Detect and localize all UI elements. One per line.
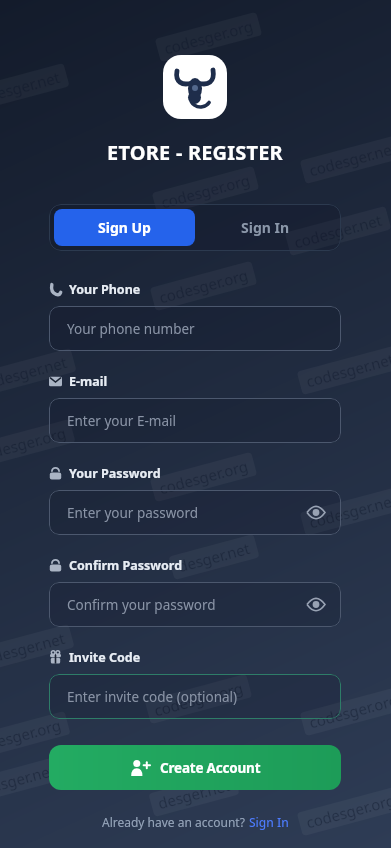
staticText: Enter your password [67,504,199,522]
button[interactable]: Sign In [249,814,289,830]
staticText: codesger.org [159,170,252,212]
staticText: codesger.org [304,790,391,832]
staticText: E-mail [69,373,108,390]
staticText: Your Password [69,465,161,482]
staticText: desger.net [0,67,62,105]
staticText: Confirm Password [69,557,183,574]
staticText: desger.org [0,423,68,461]
staticText: Sign Up [98,218,151,237]
button[interactable]: Enter your E-mail [49,398,341,443]
staticText: Invite Code [69,649,141,666]
staticText: codesger.org [157,265,250,307]
staticText: Enter your E-mail [67,412,176,430]
staticText: Sign In [249,814,289,830]
button[interactable]: Create Account [49,745,341,790]
staticText: Your phone number [67,320,195,338]
button[interactable]: Confirm your password [49,582,341,627]
staticText: codesger.org [307,690,391,732]
staticText: desger.net [0,628,67,666]
staticText: codesger.org [162,16,255,58]
staticText: codesger.org [152,678,245,720]
button[interactable]: Sign In [195,209,336,246]
staticText: ETORE - REGISTER [107,139,283,166]
staticText: Already have an account? [102,814,249,830]
staticText: Enter invite code (optional) [67,688,238,706]
staticText: Sign In [241,218,290,237]
staticText: desger.net [0,760,57,798]
button[interactable]: Sign Up [54,209,195,246]
staticText: desger.net [0,352,69,390]
staticText: Confirm your password [67,596,216,614]
button[interactable]: Enter invite code (optional) [49,674,341,719]
staticText: codesger.net [307,138,391,180]
staticText: desger.net [176,538,252,576]
staticText: codesger.org [157,456,250,498]
staticText: codesger.net [304,349,391,391]
staticText: Your Phone [69,281,141,298]
staticText: codesger.net [292,210,384,252]
button[interactable]: Your phone number [49,306,341,351]
staticText: desger.net [156,775,232,813]
staticText: desger.org [0,715,63,753]
staticText: codesger.net [307,490,391,532]
staticText: Create Account [160,759,261,777]
button[interactable]: Enter your password [49,490,341,535]
